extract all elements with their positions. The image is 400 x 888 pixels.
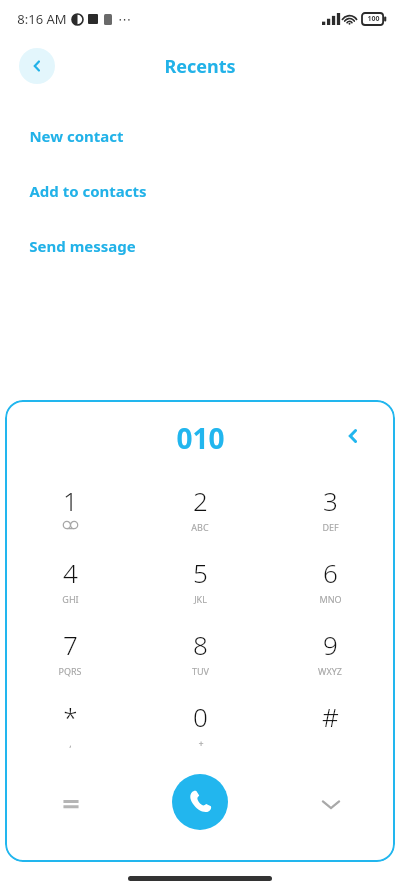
staticText: *: [63, 699, 78, 734]
staticText: Send message: [29, 236, 136, 256]
button[interactable]: *: [5, 688, 135, 760]
button[interactable]: Send message: [0, 218, 400, 273]
staticText: 6: [323, 555, 338, 590]
button[interactable]: 2: [135, 472, 265, 544]
staticText: +: [198, 737, 204, 749]
button[interactable]: 7: [5, 616, 135, 688]
staticText: GHI: [62, 593, 79, 605]
button[interactable]: 4: [5, 544, 135, 616]
button[interactable]: Call: [172, 774, 228, 830]
staticText: Add to contacts: [29, 181, 147, 201]
button[interactable]: New contact: [0, 108, 400, 163]
staticText: ,: [69, 737, 72, 749]
staticText: TUV: [192, 665, 209, 677]
staticText: 1: [63, 483, 78, 518]
staticText: 010: [176, 419, 225, 457]
staticText: 0: [193, 699, 208, 734]
button[interactable]: 1: [5, 472, 135, 544]
button[interactable]: #: [265, 688, 395, 760]
button[interactable]: Hide dial pad: [309, 782, 353, 826]
button[interactable]: 5: [135, 544, 265, 616]
staticText: 100: [367, 14, 380, 24]
button[interactable]: Add to contacts: [0, 163, 400, 218]
staticText: MNO: [319, 593, 342, 605]
button[interactable]: 9: [265, 616, 395, 688]
staticText: ⋯: [118, 12, 131, 27]
button[interactable]: Dial options: [49, 782, 93, 826]
staticText: 8:16 AM: [17, 10, 67, 28]
staticText: 4: [63, 555, 78, 590]
button[interactable]: Backspace: [331, 414, 375, 458]
staticText: 8: [193, 627, 208, 662]
button[interactable]: 0: [135, 688, 265, 760]
staticText: DEF: [322, 521, 339, 533]
button[interactable]: 8: [135, 616, 265, 688]
button[interactable]: 6: [265, 544, 395, 616]
staticText: 5: [193, 555, 208, 590]
staticText: 2: [193, 483, 208, 518]
staticText: ABC: [191, 521, 209, 533]
staticText: WXYZ: [318, 665, 342, 677]
staticText: JKL: [194, 593, 207, 605]
staticText: Recents: [164, 54, 236, 79]
staticText: 3: [323, 483, 338, 518]
staticText: PQRS: [58, 665, 82, 677]
staticText: 7: [63, 627, 78, 662]
staticText: #: [322, 699, 339, 734]
staticText: 9: [323, 627, 338, 662]
button[interactable]: Back: [19, 48, 55, 84]
staticText: New contact: [29, 126, 124, 146]
button[interactable]: 3: [265, 472, 395, 544]
